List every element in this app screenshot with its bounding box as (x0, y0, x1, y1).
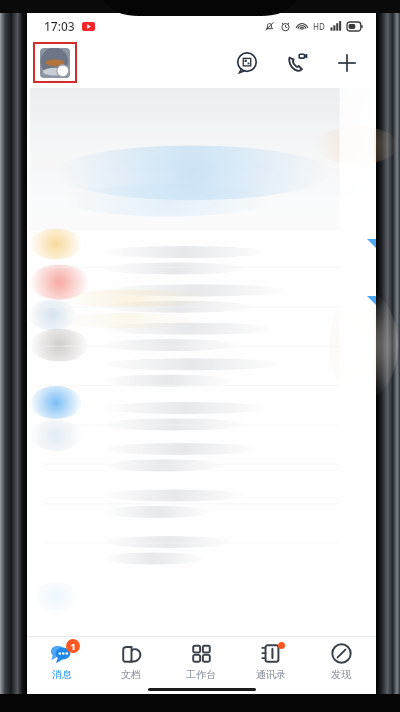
staticText: 文档 (121, 668, 141, 681)
staticText: 1 (70, 640, 76, 652)
staticText: 消息 (52, 668, 72, 681)
button[interactable]: 文档 (96, 637, 166, 685)
button[interactable]: 1 (27, 637, 96, 685)
staticText: 工作台 (186, 668, 216, 681)
button[interactable]: Video call (282, 48, 312, 78)
staticText: 通讯录 (256, 668, 286, 681)
button[interactable]: Profile avatar (35, 44, 75, 81)
staticText: 17:03 (44, 18, 75, 34)
button[interactable]: Scan QR code (232, 48, 262, 78)
staticText: 发现 (331, 668, 351, 681)
button[interactable]: 工作台 (166, 637, 236, 685)
button[interactable]: 通讯录 (236, 637, 306, 685)
staticText: HD (313, 21, 325, 32)
button[interactable]: 发现 (306, 637, 376, 685)
button[interactable]: Add (332, 48, 362, 78)
